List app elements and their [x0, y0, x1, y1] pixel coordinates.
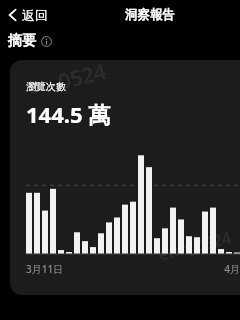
staticText: 瀏覽次數 — [26, 80, 66, 93]
staticText: 洞察報告 — [125, 7, 175, 23]
staticText: 144.5 萬 — [26, 99, 111, 129]
staticText: 返回 — [22, 7, 48, 23]
button[interactable]: 0524 — [10, 60, 240, 295]
staticText: 0524 — [55, 60, 110, 96]
staticText: er — [25, 72, 48, 99]
staticText: 摘要 — [8, 32, 36, 50]
staticText: 3月11日 — [26, 262, 64, 276]
staticText: erin_0524 — [156, 226, 233, 266]
other: Info — [41, 36, 52, 47]
staticText: 4月 — [224, 262, 240, 276]
button[interactable]: 返回 — [0, 4, 56, 26]
button[interactable]: 摘要 — [0, 30, 60, 54]
